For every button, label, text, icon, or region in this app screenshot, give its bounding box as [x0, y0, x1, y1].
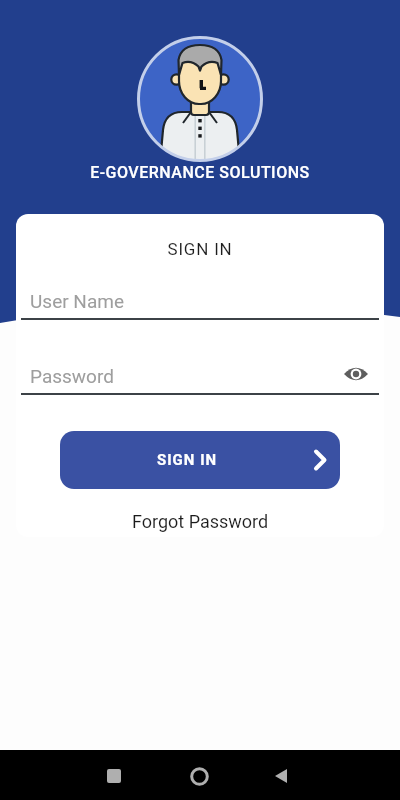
- staticText: User Name: [30, 290, 124, 312]
- staticText: E-GOVERNANCE SOLUTIONS: [0, 163, 400, 182]
- button[interactable]: [274, 769, 288, 783]
- button[interactable]: [107, 769, 121, 783]
- button[interactable]: Forgot Password: [16, 508, 384, 534]
- staticText: SIGN IN: [16, 239, 384, 259]
- button[interactable]: [190, 767, 209, 786]
- staticText: Forgot Password: [132, 511, 269, 532]
- button[interactable]: Password: [21, 351, 379, 395]
- staticText: SIGN IN: [157, 451, 218, 469]
- button[interactable]: User Name: [21, 276, 379, 320]
- staticText: Password: [30, 365, 114, 387]
- button[interactable]: [343, 361, 369, 387]
- button[interactable]: SIGN IN: [60, 431, 340, 489]
